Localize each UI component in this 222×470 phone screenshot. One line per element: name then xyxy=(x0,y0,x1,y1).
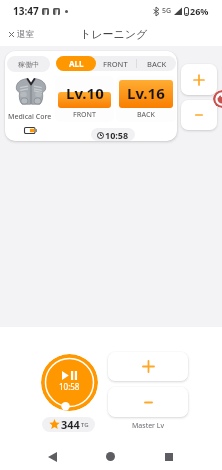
staticText: Lv.10 xyxy=(66,83,104,103)
staticText: Medical Core xyxy=(8,112,52,122)
button[interactable]: 344 xyxy=(42,417,95,432)
button[interactable]: Recent apps xyxy=(155,443,182,470)
staticText: トレーニング xyxy=(80,27,148,41)
button[interactable]: BACK xyxy=(137,56,176,71)
staticText: 26% xyxy=(190,5,209,17)
staticText: 稼働中 xyxy=(18,60,39,69)
staticText: 13:47 xyxy=(13,4,39,18)
button[interactable]: FRONT xyxy=(95,56,136,71)
button[interactable]: Play or pause training xyxy=(41,354,98,411)
staticText: 10:58 xyxy=(105,129,129,141)
button[interactable]: Lv.16 xyxy=(116,76,176,122)
staticText: TG xyxy=(81,421,89,429)
button[interactable]: Home xyxy=(97,443,124,470)
button[interactable]: Increase master level xyxy=(108,352,188,381)
staticText: ALL xyxy=(69,58,84,69)
staticText: 344 xyxy=(61,417,80,432)
staticText: BACK xyxy=(137,110,155,120)
button[interactable]: Decrease master level xyxy=(108,387,188,417)
button[interactable]: 退室 xyxy=(0,24,43,45)
staticText: 退室 xyxy=(17,29,34,40)
staticText: BACK xyxy=(147,59,167,69)
staticText: 10:58 xyxy=(59,381,80,392)
button[interactable]: ALL xyxy=(56,56,96,71)
staticText: FRONT xyxy=(103,59,128,69)
button[interactable]: Back xyxy=(39,443,66,470)
button[interactable]: Increase level xyxy=(181,64,217,95)
button[interactable]: 稼働中 xyxy=(7,56,50,72)
staticText: 5G xyxy=(162,6,172,16)
staticText: Master Lv xyxy=(132,421,165,431)
staticText: FRONT xyxy=(73,110,96,120)
button[interactable]: Lv.10 xyxy=(55,76,114,122)
staticText: Lv.16 xyxy=(127,83,165,103)
button[interactable]: Decrease level xyxy=(181,100,217,130)
